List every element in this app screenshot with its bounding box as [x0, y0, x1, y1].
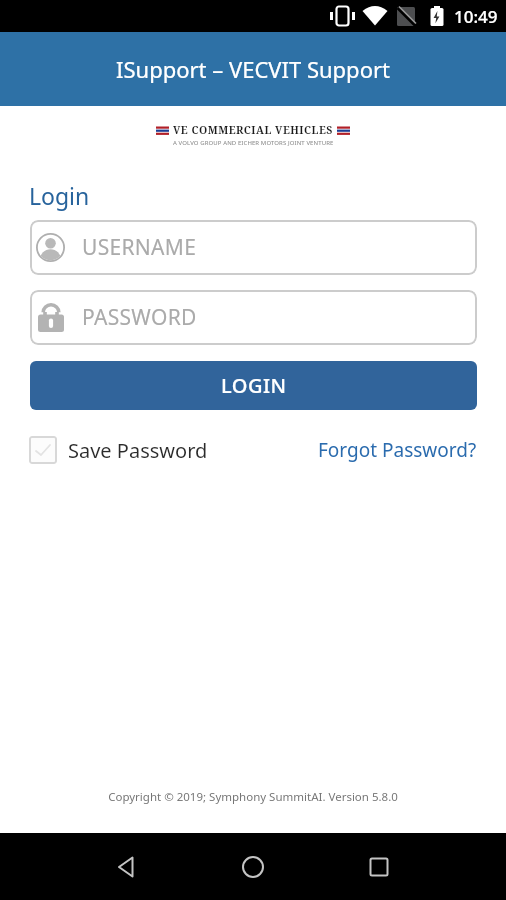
- staticText: Login: [29, 180, 90, 211]
- button[interactable]: [85, 833, 169, 900]
- staticText: USERNAME: [82, 233, 197, 262]
- staticText: ISupport – VECVIT Support: [116, 54, 390, 84]
- button[interactable]: USERNAME: [30, 220, 477, 275]
- staticText: 10:49: [454, 5, 498, 28]
- staticText: PASSWORD: [82, 303, 197, 332]
- button[interactable]: Forgot Password?: [318, 437, 477, 463]
- staticText: VE COMMERCIAL VEHICLES: [173, 123, 333, 137]
- staticText: Save Password: [68, 437, 208, 464]
- button[interactable]: Save Password: [29, 436, 208, 464]
- staticText: A VOLVO GROUP AND EICHER MOTORS JOINT VE…: [173, 139, 334, 147]
- button[interactable]: [211, 833, 295, 900]
- button[interactable]: PASSWORD: [30, 290, 477, 345]
- staticText: LOGIN: [221, 372, 287, 399]
- staticText: Copyright © 2019; Symphony SummitAI. Ver…: [0, 789, 506, 805]
- button[interactable]: [337, 833, 421, 900]
- button[interactable]: LOGIN: [30, 361, 477, 410]
